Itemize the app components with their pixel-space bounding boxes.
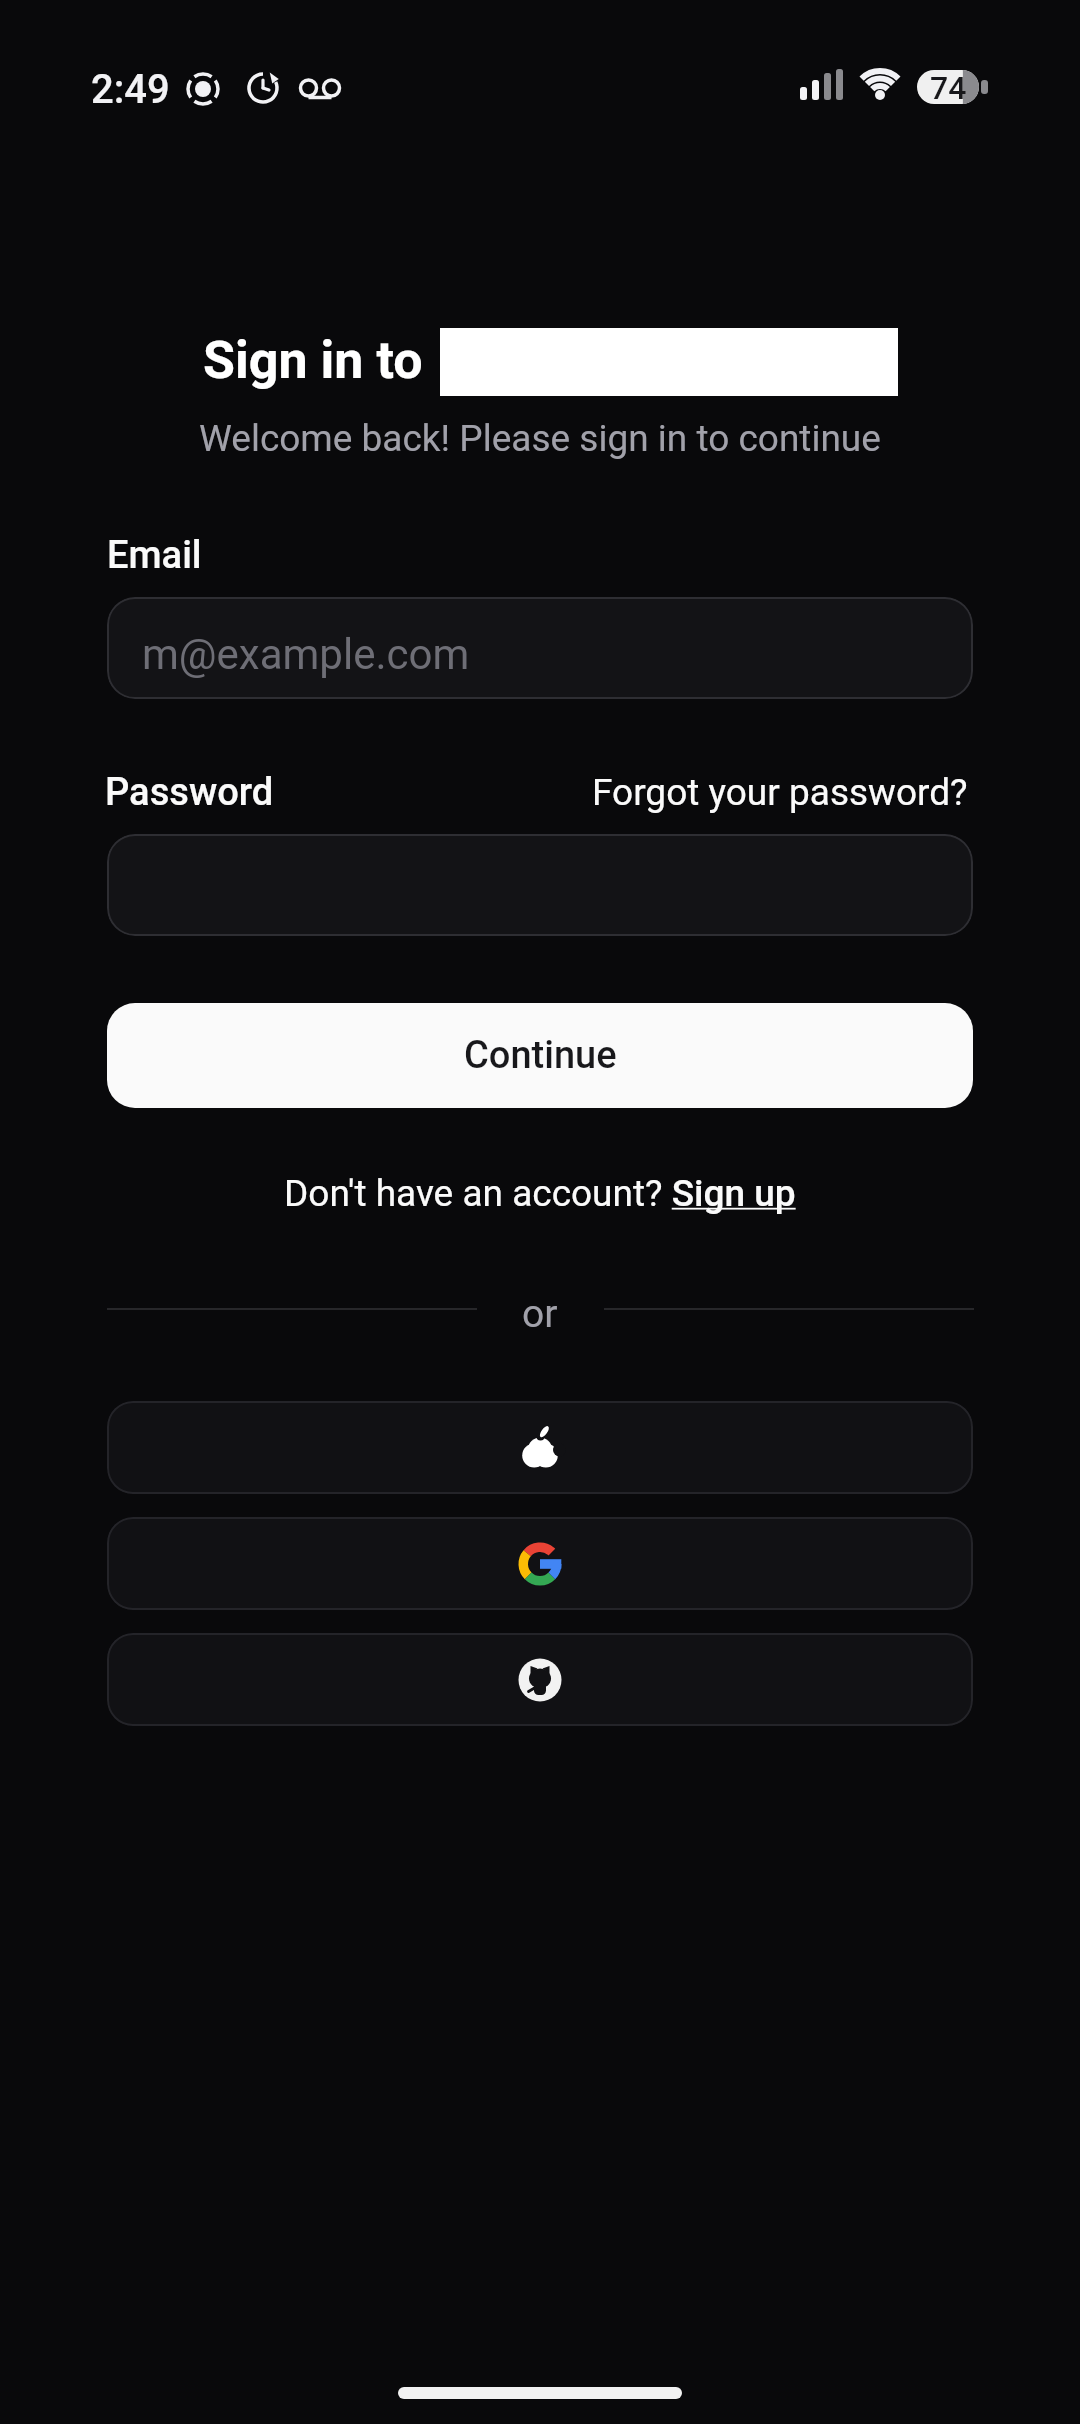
staticText: 74 [930, 69, 967, 107]
button[interactable] [107, 1517, 973, 1610]
button[interactable]: Forgot your password? [592, 771, 968, 814]
button[interactable] [107, 834, 973, 936]
staticText: Email [107, 533, 202, 578]
staticText: Continue [464, 1033, 617, 1078]
button[interactable] [107, 597, 973, 699]
staticText: m@example.com [142, 630, 470, 679]
staticText: Sign in to [203, 330, 423, 391]
button[interactable]: Continue [107, 1003, 973, 1108]
button[interactable]: Don't have an account? Sign up [284, 1172, 796, 1215]
staticText: 2:49 [91, 66, 170, 113]
staticText: Welcome back! Please sign in to continue [199, 417, 881, 460]
staticText: or [522, 1291, 558, 1337]
button[interactable] [107, 1633, 973, 1726]
button[interactable] [107, 1401, 973, 1494]
staticText: Password [105, 770, 274, 815]
